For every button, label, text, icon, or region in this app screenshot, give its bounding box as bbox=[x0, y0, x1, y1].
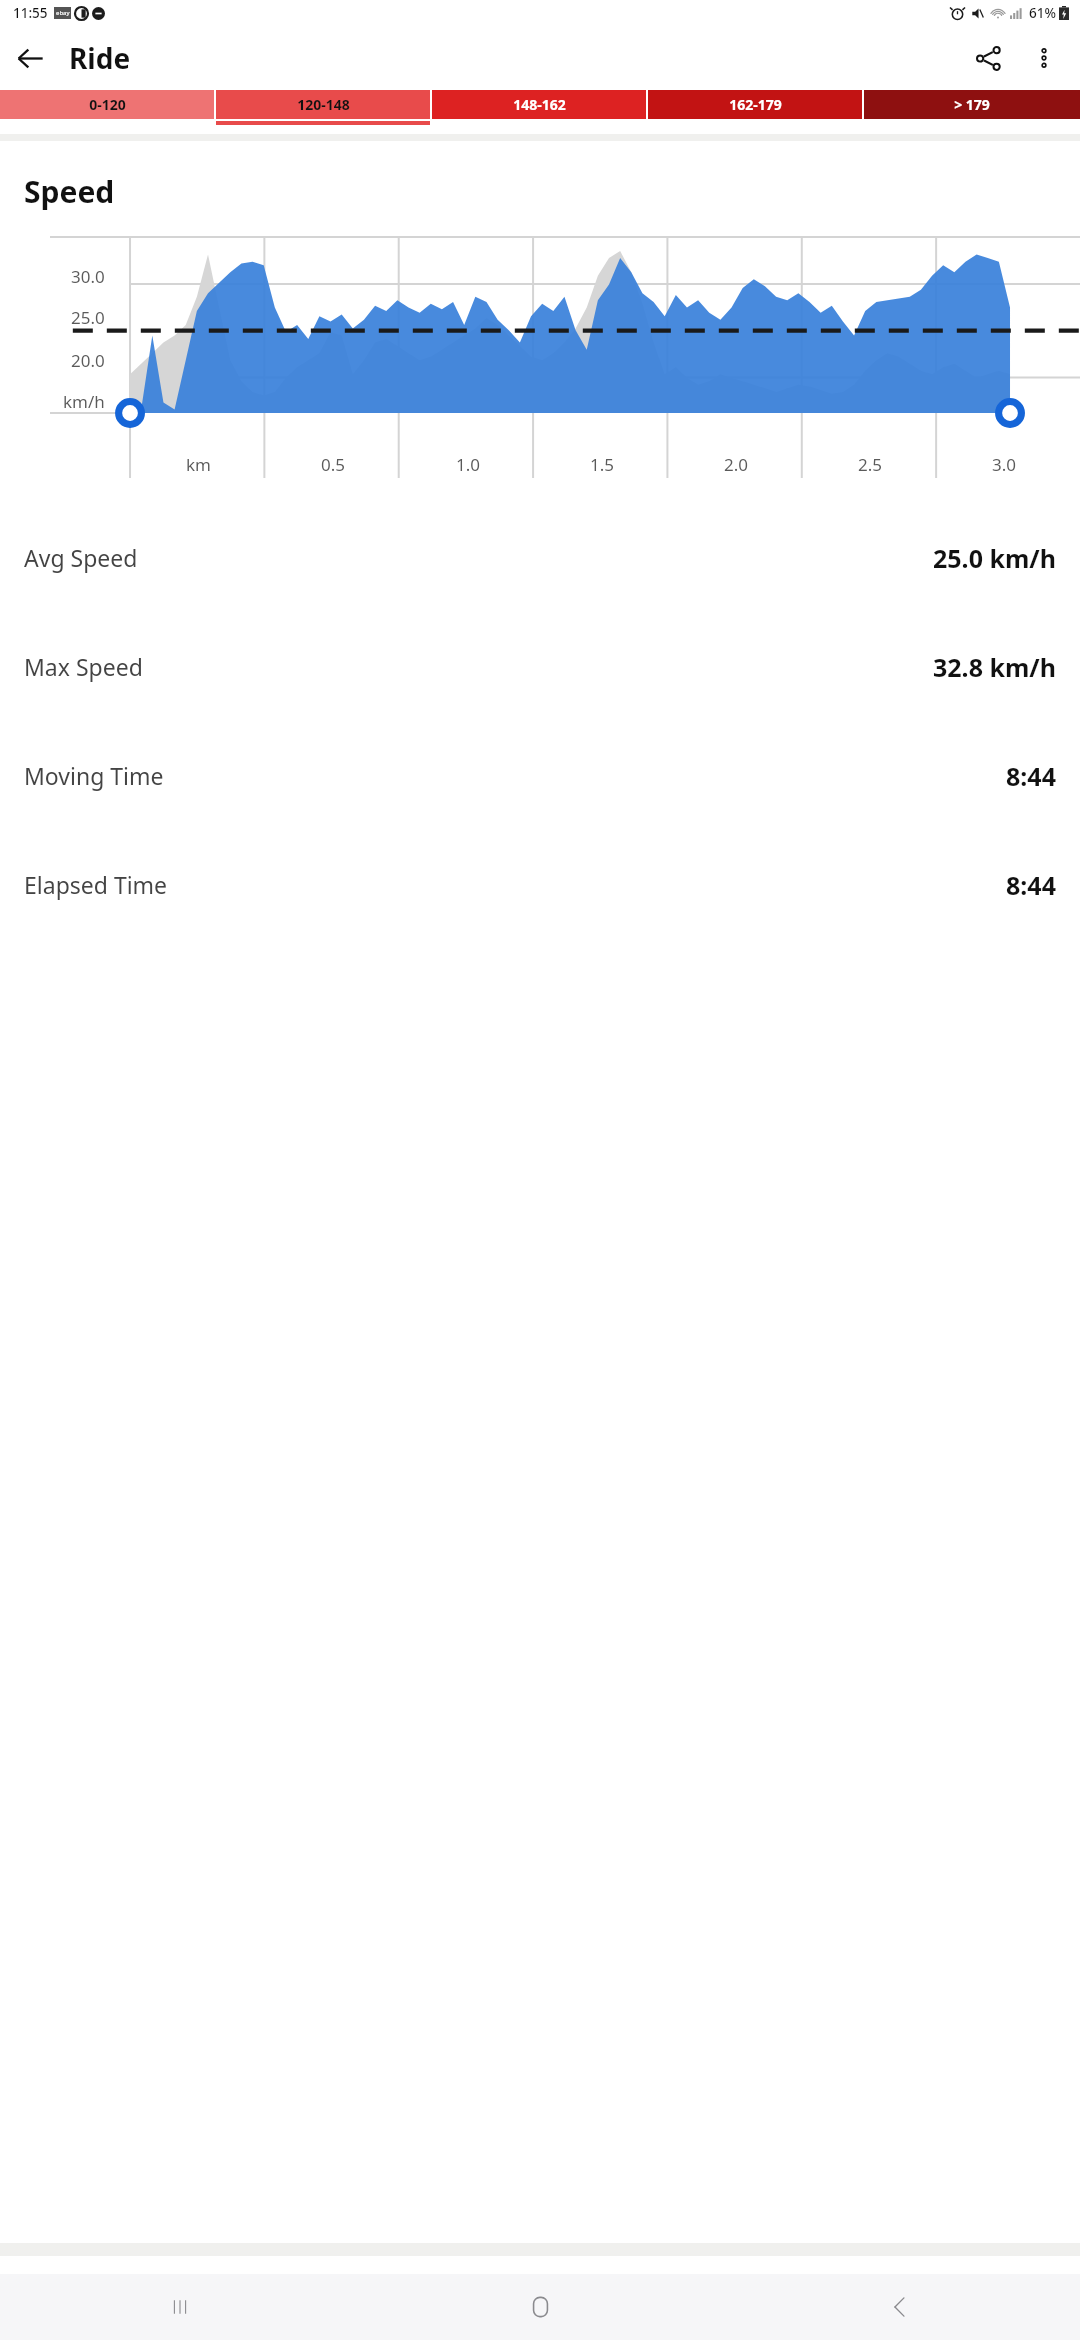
staticText: km bbox=[186, 453, 211, 476]
staticText: 25.0 bbox=[71, 306, 105, 329]
staticText: 1.5 bbox=[590, 453, 615, 476]
staticText: 120-148 bbox=[297, 95, 350, 114]
staticText: Elapsed Time bbox=[24, 869, 168, 900]
button[interactable]: 120-148 bbox=[216, 90, 430, 119]
button[interactable]: Elapsed Time bbox=[0, 830, 1080, 939]
staticText: 162-179 bbox=[729, 95, 782, 114]
staticText: 30.0 bbox=[71, 265, 105, 288]
staticText: 20.0 bbox=[71, 349, 105, 372]
button[interactable]: Share bbox=[960, 30, 1016, 86]
button[interactable]: 162-179 bbox=[648, 90, 862, 119]
staticText: 32.8 km/h bbox=[933, 650, 1056, 684]
button[interactable]: Back bbox=[0, 28, 60, 88]
staticText: 11:55 bbox=[13, 4, 48, 22]
button[interactable]: Home bbox=[360, 2274, 720, 2340]
staticText: 2.5 bbox=[858, 453, 883, 476]
button[interactable]: 0-120 bbox=[0, 90, 214, 119]
button[interactable]: Moving Time bbox=[0, 721, 1080, 830]
button[interactable]: Max Speed bbox=[0, 612, 1080, 721]
staticText: Speed bbox=[24, 171, 115, 212]
button[interactable]: Back bbox=[720, 2274, 1080, 2340]
staticText: km/h bbox=[63, 390, 105, 413]
staticText: Max Speed bbox=[24, 651, 143, 682]
button[interactable]: More options bbox=[1016, 30, 1072, 86]
staticText: 0-120 bbox=[89, 95, 126, 114]
staticText: 8:44 bbox=[1006, 759, 1056, 793]
staticText: 0.5 bbox=[321, 453, 346, 476]
staticText: 8:44 bbox=[1006, 868, 1056, 902]
button[interactable]: Avg Speed bbox=[0, 503, 1080, 612]
staticText: Avg Speed bbox=[24, 542, 138, 573]
staticText: 61% bbox=[1029, 4, 1056, 22]
staticText: Moving Time bbox=[24, 760, 164, 791]
staticText: 1.0 bbox=[456, 453, 481, 476]
button[interactable]: Recent apps bbox=[0, 2274, 360, 2340]
staticText: ebay bbox=[56, 9, 70, 17]
button[interactable]: 148-162 bbox=[432, 90, 646, 119]
staticText: > 179 bbox=[954, 95, 990, 114]
staticText: 148-162 bbox=[513, 95, 566, 114]
button[interactable]: > 179 bbox=[864, 90, 1080, 119]
staticText: 3.0 bbox=[992, 453, 1017, 476]
staticText: 25.0 km/h bbox=[933, 541, 1056, 575]
staticText: Ride bbox=[69, 39, 131, 77]
staticText: 2.0 bbox=[724, 453, 749, 476]
